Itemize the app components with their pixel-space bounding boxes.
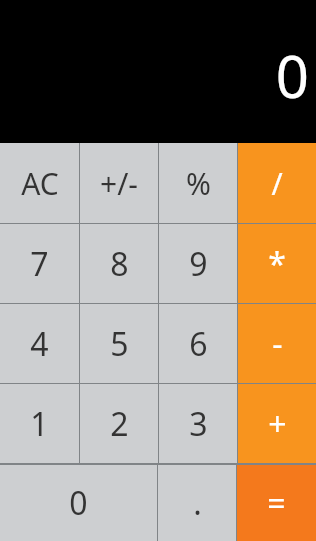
button[interactable]: * bbox=[238, 224, 316, 303]
button[interactable]: 0 bbox=[0, 465, 157, 541]
staticText: 4 bbox=[30, 322, 49, 366]
staticText: 8 bbox=[110, 242, 129, 286]
staticText: % bbox=[186, 163, 211, 204]
button[interactable]: 5 bbox=[80, 304, 158, 383]
staticText: 0 bbox=[275, 36, 309, 115]
button[interactable]: + bbox=[238, 384, 316, 463]
button[interactable]: = bbox=[237, 465, 316, 541]
button[interactable]: AC bbox=[0, 143, 79, 223]
staticText: - bbox=[272, 322, 283, 366]
staticText: 6 bbox=[189, 322, 208, 366]
button[interactable]: 9 bbox=[159, 224, 237, 303]
staticText: + bbox=[268, 402, 287, 446]
button[interactable]: 1 bbox=[0, 384, 79, 463]
button[interactable]: / bbox=[238, 143, 316, 223]
staticText: 0 bbox=[69, 481, 88, 525]
staticText: = bbox=[267, 481, 286, 525]
button[interactable]: . bbox=[158, 465, 236, 541]
staticText: 3 bbox=[189, 402, 208, 446]
button[interactable]: 4 bbox=[0, 304, 79, 383]
staticText: +/- bbox=[100, 163, 138, 204]
button[interactable]: 2 bbox=[80, 384, 158, 463]
button[interactable]: 8 bbox=[80, 224, 158, 303]
staticText: / bbox=[271, 163, 283, 204]
staticText: AC bbox=[21, 163, 59, 204]
button[interactable]: 7 bbox=[0, 224, 79, 303]
button[interactable]: % bbox=[159, 143, 237, 223]
staticText: . bbox=[193, 481, 202, 525]
staticText: 2 bbox=[110, 402, 129, 446]
button[interactable]: - bbox=[238, 304, 316, 383]
staticText: 7 bbox=[30, 242, 49, 286]
staticText: 1 bbox=[30, 402, 49, 446]
staticText: * bbox=[268, 242, 286, 286]
staticText: 9 bbox=[189, 242, 208, 286]
staticText: 5 bbox=[110, 322, 129, 366]
button[interactable]: 6 bbox=[159, 304, 237, 383]
button[interactable]: 3 bbox=[159, 384, 237, 463]
button[interactable]: +/- bbox=[80, 143, 158, 223]
